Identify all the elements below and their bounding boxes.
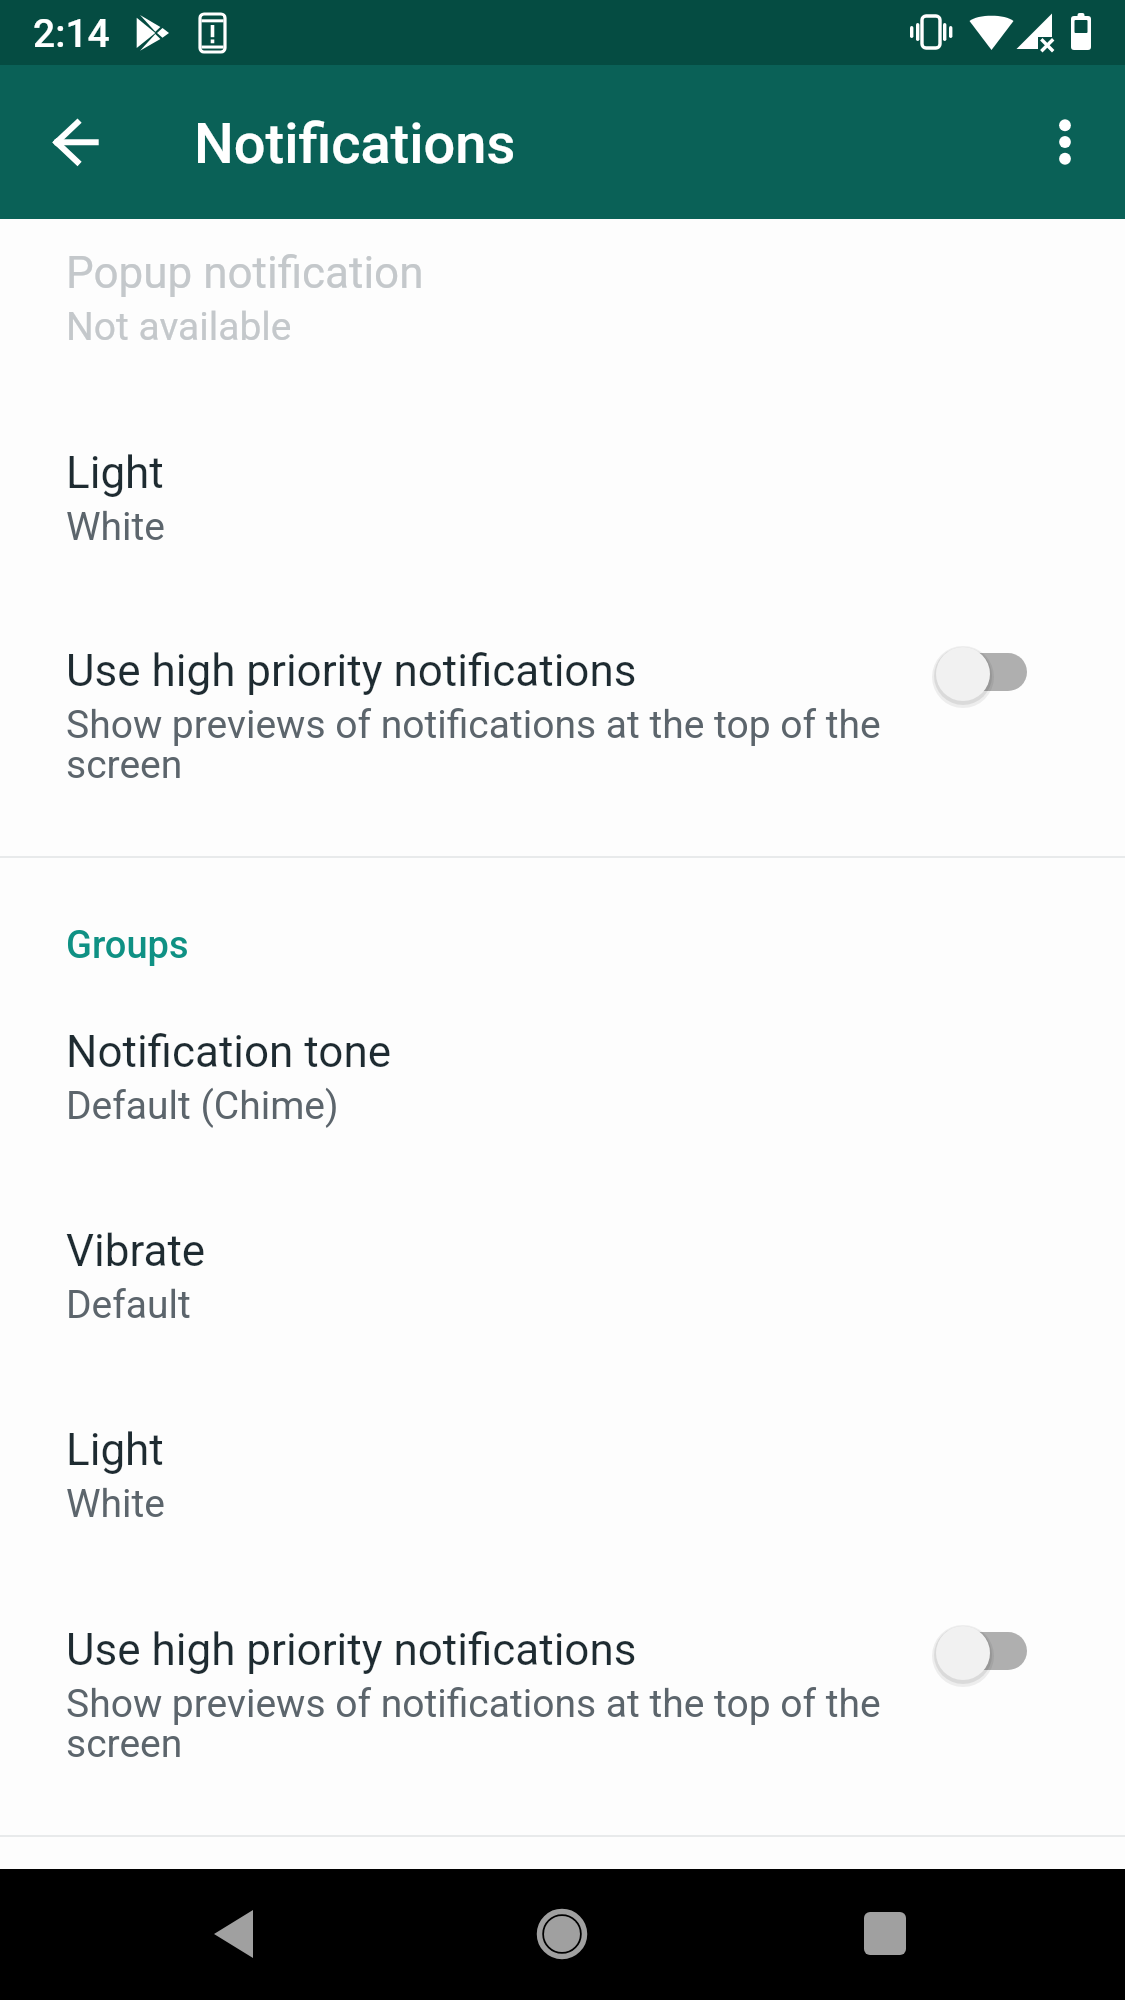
staticText: Vibrate [66, 1225, 206, 1277]
staticText: Default (Chime) [66, 1083, 339, 1129]
button[interactable]: Back [174, 1874, 294, 1994]
staticText: Light [66, 1424, 164, 1476]
staticText: Popup notification [66, 247, 424, 299]
staticText: Not available [66, 304, 292, 350]
button[interactable]: Recent apps [825, 1874, 945, 1994]
staticText: Use high priority notifications [66, 645, 637, 697]
staticText: Show previews of notifications at the to… [66, 1681, 881, 1727]
button[interactable]: Use high priority notifications [0, 609, 1125, 808]
button[interactable]: Navigate up [26, 92, 126, 192]
button[interactable]: Use high priority notifications, off [905, 634, 1045, 714]
button[interactable]: More options [1015, 92, 1115, 192]
button[interactable]: Vibrate [0, 1189, 1125, 1388]
staticText: Show previews of notifications at the to… [66, 702, 881, 748]
button[interactable]: Light [0, 411, 1125, 610]
staticText: Groups [66, 923, 189, 968]
staticText: White [66, 1481, 166, 1527]
button[interactable]: Home [502, 1874, 622, 1994]
button[interactable]: Light [0, 1388, 1125, 1587]
staticText: Notifications [194, 111, 516, 177]
button[interactable]: Use high priority notifications [0, 1588, 1125, 1787]
staticText: 2:14 [33, 11, 110, 57]
staticText: Default [66, 1282, 191, 1328]
staticText: Notification tone [66, 1026, 392, 1078]
staticText: Use high priority notifications [66, 1624, 637, 1676]
button[interactable]: Use high priority notifications, off [905, 1613, 1045, 1693]
staticText: screen [66, 742, 183, 788]
button[interactable]: Popup notification [0, 219, 1125, 410]
staticText: screen [66, 1721, 183, 1767]
staticText: Light [66, 447, 164, 499]
staticText: White [66, 504, 166, 550]
button[interactable]: Notification tone [0, 990, 1125, 1189]
